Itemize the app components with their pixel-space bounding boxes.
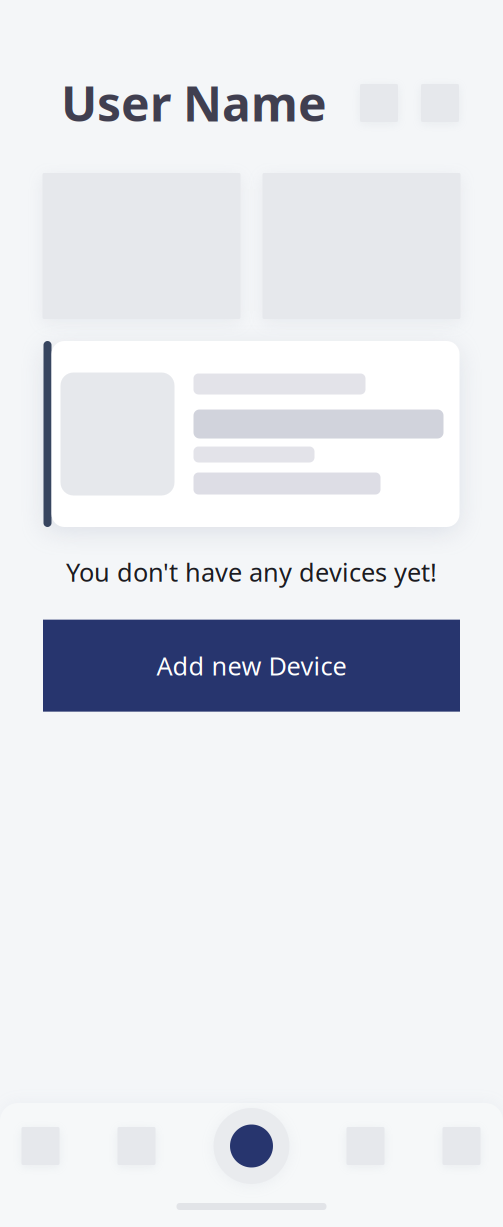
button[interactable] bbox=[43, 341, 459, 527]
staticText: You don't have any devices yet! bbox=[66, 555, 437, 589]
staticText: User Name bbox=[61, 71, 327, 135]
staticText: Add new Device bbox=[156, 649, 346, 682]
button[interactable]: Add device bbox=[213, 1108, 289, 1184]
button[interactable]: Add new Device bbox=[43, 620, 460, 712]
